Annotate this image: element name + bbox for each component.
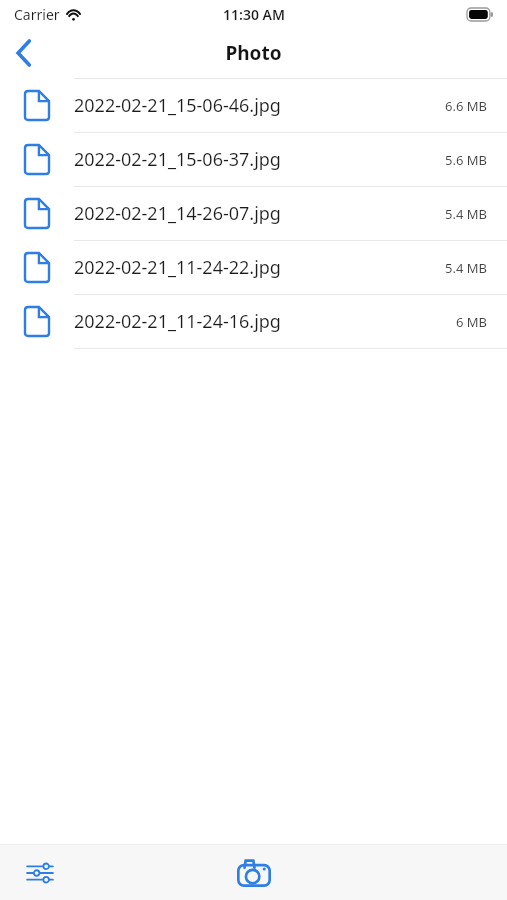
staticText: 5.4 MB (445, 205, 487, 223)
button[interactable]: 2022-02-21_15-06-37.jpg (0, 133, 507, 186)
staticText: 11:30 AM (223, 5, 285, 24)
button[interactable]: 2022-02-21_11-24-16.jpg (0, 295, 507, 348)
button[interactable]: Filter settings (16, 849, 64, 897)
staticText: 5.6 MB (445, 151, 487, 169)
button[interactable]: 2022-02-21_15-06-46.jpg (0, 79, 507, 132)
button[interactable]: 2022-02-21_11-24-22.jpg (0, 241, 507, 294)
staticText: 2022-02-21_15-06-46.jpg (74, 93, 445, 118)
button[interactable]: Back (0, 29, 48, 77)
staticText: 6.6 MB (445, 97, 487, 115)
staticText: 2022-02-21_11-24-16.jpg (74, 309, 455, 334)
staticText: 2022-02-21_11-24-22.jpg (74, 255, 445, 280)
staticText: 5.4 MB (445, 259, 487, 277)
staticText: 6 MB (455, 313, 487, 331)
staticText: 2022-02-21_15-06-37.jpg (74, 147, 445, 172)
button[interactable]: 2022-02-21_14-26-07.jpg (0, 187, 507, 240)
button[interactable]: Camera (228, 847, 280, 899)
staticText: Carrier (14, 5, 60, 24)
staticText: 2022-02-21_14-26-07.jpg (74, 201, 445, 226)
staticText: Photo (225, 40, 282, 66)
